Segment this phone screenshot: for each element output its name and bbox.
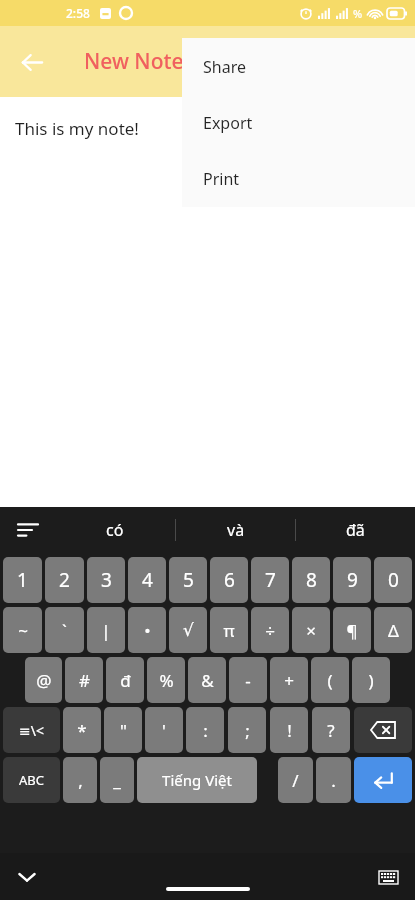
button[interactable]: - [229,657,267,703]
staticText: 8 [306,567,317,593]
staticText: : [203,719,208,742]
button[interactable]: # [65,657,103,703]
button[interactable]: 8 [292,557,330,603]
button[interactable]: Change keyboard [369,858,407,896]
staticText: ; [245,719,250,742]
button[interactable]: 6 [210,557,248,603]
staticText: ABC [19,771,44,789]
button[interactable]: 9 [333,557,371,603]
staticText: % [353,6,363,21]
button[interactable]: Export [182,95,415,151]
staticText: có [106,519,124,541]
button[interactable]: ' [145,707,183,753]
button[interactable]: key [354,707,412,753]
staticText: ÷ [265,619,275,642]
staticText: và [227,519,245,541]
staticText: . [331,769,336,792]
staticText: | [101,619,111,642]
staticText: ( [327,669,333,692]
button[interactable]: ¶ [333,607,371,653]
staticText: 1 [17,567,28,593]
button[interactable]: Δ [374,607,412,653]
staticText: ¶ [346,619,358,642]
staticText: π [223,619,235,642]
staticText: / [292,769,299,792]
staticText: & [201,669,214,692]
button[interactable]: ` [45,607,84,653]
button[interactable]: ~ [3,607,42,653]
button[interactable]: key [354,757,412,803]
staticText: ≡\< [19,721,44,740]
button[interactable]: Print [182,151,415,207]
button[interactable]: có [55,507,175,553]
staticText: 0 [388,567,399,593]
staticText: + [284,669,294,692]
staticText: 9 [347,567,358,593]
button[interactable]: 1 [3,557,42,603]
staticText: ` [62,619,67,642]
button[interactable]: Share [182,38,415,95]
button[interactable]: 5 [169,557,207,603]
button[interactable]: / [278,757,313,803]
staticText: × [306,619,316,642]
button[interactable]: đ [106,657,144,703]
button[interactable]: * [63,707,101,753]
button[interactable]: 3 [87,557,125,603]
button[interactable]: " [104,707,142,753]
staticText: % [159,669,174,692]
button[interactable]: ? [312,707,350,753]
staticText: ) [368,669,374,692]
button[interactable]: : [186,707,224,753]
button[interactable]: _ [100,757,134,803]
button[interactable]: • [128,607,166,653]
button[interactable]: Hide keyboard [6,856,48,898]
staticText: 2:58 [66,5,90,21]
staticText: 2 [59,567,70,593]
button[interactable]: 2 [45,557,84,603]
staticText: 7 [265,567,276,593]
staticText: - [245,669,251,692]
staticText: 6 [224,567,235,593]
button[interactable]: Tiếng Việt [137,757,257,803]
button[interactable]: Suggestions menu [0,507,55,553]
button[interactable]: ÷ [251,607,289,653]
staticText: đ [120,669,131,692]
button[interactable]: . [316,757,351,803]
button[interactable]: 0 [374,557,412,603]
staticText: Export [203,112,253,134]
button[interactable]: √ [169,607,207,653]
button[interactable]: % [147,657,185,703]
button[interactable]: | [87,607,125,653]
staticText: Print [203,168,240,190]
button[interactable]: ) [352,657,390,703]
staticText: " [120,719,127,742]
staticText: ~ [18,619,28,642]
staticText: Δ [388,619,399,642]
button[interactable]: ABC [3,757,60,803]
staticText: √ [183,620,194,640]
button[interactable]: ! [270,707,308,753]
button[interactable]: @ [25,657,62,703]
staticText: @ [36,669,52,692]
button[interactable]: 7 [251,557,289,603]
button[interactable]: & [188,657,226,703]
button[interactable]: và [176,507,295,553]
button[interactable]: , [63,757,97,803]
staticText: ! [287,719,292,742]
staticText: Tiếng Việt [162,770,232,790]
staticText: • [144,619,151,642]
button[interactable]: ≡\< [3,707,60,753]
button[interactable]: ( [311,657,349,703]
staticText: đã [346,519,365,541]
button[interactable]: Back [8,38,56,86]
button[interactable]: ; [228,707,266,753]
button[interactable]: đã [296,507,415,553]
staticText: _ [113,769,121,792]
staticText: , [78,769,83,792]
staticText: ? [327,719,335,742]
button[interactable]: 4 [128,557,166,603]
staticText: New Note [84,47,184,76]
button[interactable]: π [210,607,248,653]
button[interactable]: + [270,657,308,703]
button[interactable]: × [292,607,330,653]
